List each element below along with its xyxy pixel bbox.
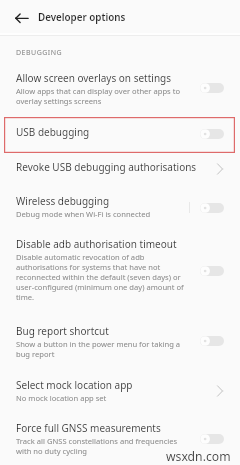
staticText: Disable adb authorisation timeout — [16, 237, 177, 251]
staticText: wsxdn.com — [166, 448, 231, 465]
button[interactable]: Open — [212, 384, 226, 398]
button[interactable]: Allow screen overlays on settings — [0, 60, 240, 116]
button[interactable]: Back — [9, 5, 35, 31]
button[interactable]: Toggle — [200, 266, 224, 276]
button[interactable]: Wireless debugging — [0, 186, 240, 229]
button[interactable]: Toggle — [200, 83, 224, 93]
button[interactable]: Revoke USB debugging authorisations — [0, 152, 240, 186]
staticText: Show a button in the power menu for taki… — [16, 339, 181, 359]
staticText: USB debugging — [16, 125, 90, 139]
staticText: Allow screen overlays on settings — [16, 71, 171, 85]
button[interactable]: Select mock location app — [0, 369, 240, 412]
button[interactable]: Toggle — [200, 129, 224, 139]
staticText: Debug mode when Wi-Fi is connected — [16, 209, 151, 219]
button[interactable]: Bug report shortcut — [0, 312, 240, 369]
button[interactable]: Toggle — [200, 203, 224, 213]
staticText: Select mock location app — [16, 378, 133, 392]
staticText: Allow apps that can display over other a… — [16, 86, 181, 106]
staticText: Disable automatic revocation of adb auth… — [16, 252, 184, 302]
button[interactable]: Disable adb authorisation timeout — [0, 229, 240, 312]
button[interactable]: Toggle — [200, 336, 224, 346]
staticText: No mock location app set — [16, 393, 107, 403]
staticText: Force full GNSS measurements — [16, 421, 161, 435]
staticText: Developer options — [38, 11, 126, 24]
staticText: DEBUGGING — [16, 48, 63, 58]
staticText: Bug report shortcut — [16, 324, 109, 338]
button[interactable]: Open — [212, 162, 226, 176]
button[interactable]: Force full GNSS measurements — [0, 412, 240, 465]
button[interactable]: USB debugging — [0, 116, 240, 152]
staticText: Wireless debugging — [16, 194, 110, 208]
button[interactable]: Toggle — [200, 434, 224, 444]
staticText: Revoke USB debugging authorisations — [16, 160, 197, 174]
staticText: Track all GNSS constellations and freque… — [16, 436, 178, 456]
